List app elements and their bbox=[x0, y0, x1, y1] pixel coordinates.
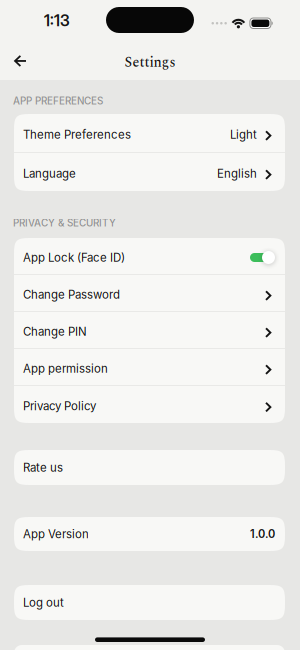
staticText: English bbox=[217, 167, 257, 180]
staticText: 1:13 bbox=[44, 11, 70, 30]
staticText: Log out bbox=[23, 596, 64, 609]
button[interactable]: Change PIN bbox=[14, 312, 285, 348]
button[interactable]: Rate us bbox=[14, 450, 285, 485]
staticText: Language bbox=[23, 167, 76, 180]
staticText: Change Password bbox=[23, 288, 120, 301]
button[interactable]: App Lock (Face ID) bbox=[14, 238, 285, 274]
button[interactable]: Back bbox=[0, 47, 26, 75]
staticText: Change PIN bbox=[23, 325, 87, 338]
staticText: App permission bbox=[23, 362, 108, 375]
button[interactable]: Language bbox=[14, 153, 285, 191]
button[interactable]: Theme Preferences bbox=[14, 114, 285, 152]
staticText: APP PREFERENCES bbox=[13, 95, 103, 107]
staticText: Privacy Policy bbox=[23, 399, 96, 413]
button[interactable]: Log out bbox=[14, 585, 285, 620]
staticText: Light bbox=[230, 128, 257, 141]
staticText: PRIVACY & SECURITY bbox=[13, 217, 116, 229]
button[interactable]: Change Password bbox=[14, 275, 285, 311]
button[interactable]: App permission bbox=[14, 349, 285, 385]
staticText: Settings bbox=[124, 52, 175, 73]
staticText: App Lock (Face ID) bbox=[23, 251, 125, 264]
staticText: Theme Preferences bbox=[23, 128, 131, 141]
staticText: 1.0.0 bbox=[250, 527, 275, 541]
staticText: App Version bbox=[23, 527, 89, 541]
staticText: Rate us bbox=[23, 461, 63, 474]
button[interactable]: Privacy Policy bbox=[14, 386, 285, 423]
